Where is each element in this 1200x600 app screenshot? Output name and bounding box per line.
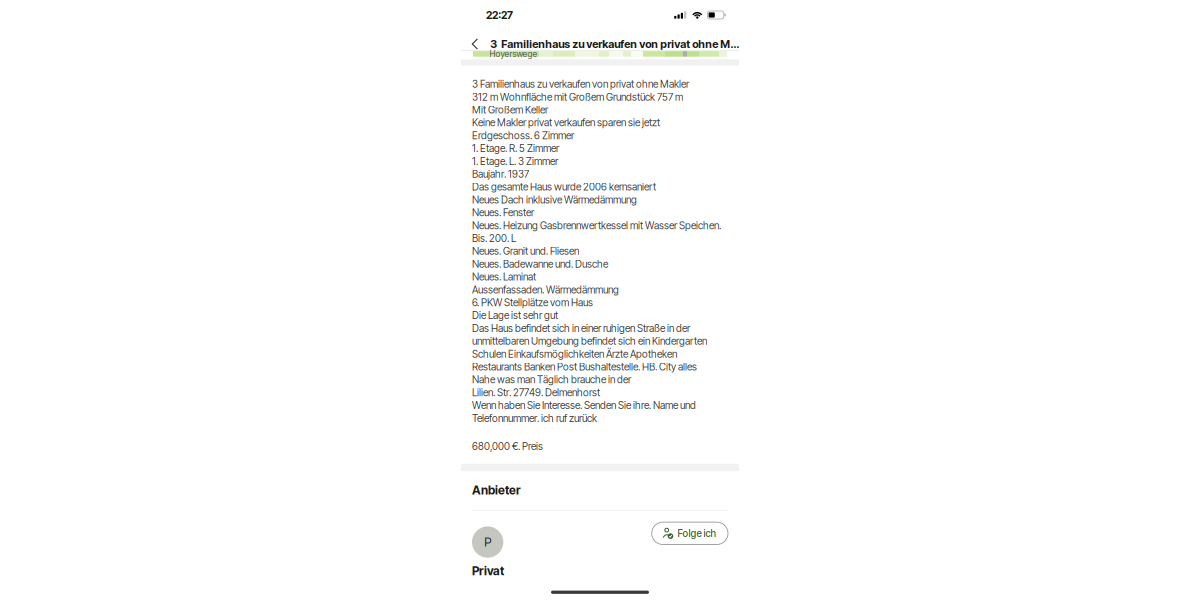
staticText: Baujahr. 1937 [472,168,529,180]
staticText: Die Lage ist sehr gut [472,309,558,322]
staticText: Erdgeschoss. 6 Zimmer [472,129,574,142]
staticText: 312 m Wohnfläche mit Großem Grundstück 7… [472,91,683,103]
staticText: Nahe was man Täglich brauche in der [472,373,631,386]
staticText: Wenn haben Sie Interesse. Senden Sie ihr… [472,399,696,411]
staticText: Neues. Badewanne und. Dusche [472,258,608,270]
staticText: Das gesamte Haus wurde 2006 kernsaniert [472,181,656,193]
button[interactable]: Zurück [472,38,492,50]
staticText: Keine Makler privat verkaufen sparen sie… [472,116,660,129]
staticText: 22:27 [486,8,513,21]
staticText: 6. PKW Stellplätze vom Haus [472,296,593,309]
button[interactable]: Folge ich [652,522,728,544]
staticText: Lilien. Str. 27749. Delmenhorst [472,386,600,399]
staticText: Anbieter [472,483,521,497]
staticText: Telefonnummer. ich ruf zurück [472,412,597,424]
staticText: 680,000 €. Preis [472,440,543,452]
staticText: Neues. Laminat [472,271,536,283]
staticText: unmittelbaren Umgebung befindet sich ein… [472,335,707,347]
staticText: 3 Familienhaus zu verkaufen von privat o… [490,37,739,50]
staticText: Neues. Granit und. Fliesen [472,245,579,257]
staticText: Aussenfassaden. Wärmedämmung [472,284,619,296]
staticText: Neues. Fenster [472,206,534,219]
staticText: Restaurants Banken Post Bushaltestelle. … [472,361,697,373]
staticText: Mit Großem Keller [472,104,548,116]
staticText: Neues Dach inklusive Wärmedämmung [472,194,637,206]
staticText: 1. Etage. L. 3 Zimmer [472,155,558,167]
staticText: Schulen Einkaufsmöglichkeiten Ärzte Apot… [472,348,677,360]
staticText: Das Haus befindet sich in einer ruhigen … [472,322,690,334]
staticText: Hoyerswege [489,49,537,59]
staticText: P [484,535,491,550]
staticText: Privat [472,563,504,578]
staticText: Bis. 200. L [472,232,516,244]
staticText: 1. Etage. R. 5 Zimmer [472,142,559,154]
staticText: 3 Familienhaus zu verkaufen von privat o… [472,78,689,90]
staticText: Neues. Heizung Gasbrennwertkessel mit Wa… [472,219,721,232]
button[interactable]: Profilbild Privat [472,526,503,558]
staticText: Folge ich [677,527,716,539]
